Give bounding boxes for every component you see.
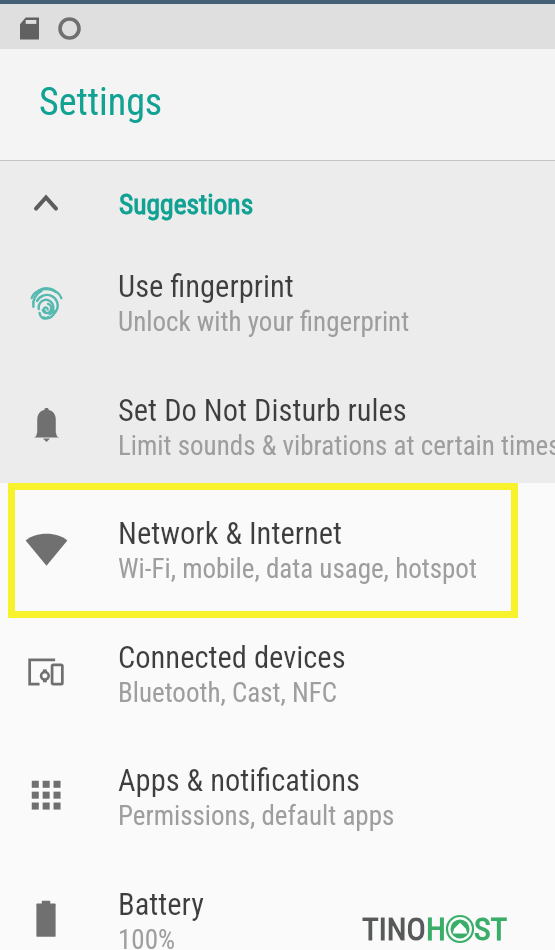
staticText: Set Do Not Disturb rules <box>118 393 407 429</box>
other: Do not disturb <box>32 408 61 442</box>
button[interactable] <box>0 240 555 364</box>
other: Status <box>58 17 81 40</box>
other: Battery <box>31 900 61 938</box>
staticText: Suggestions <box>119 188 254 220</box>
staticText: Unlock with your fingerprint <box>118 306 410 338</box>
staticText: Limit sounds & vibrations at certain tim… <box>118 430 555 462</box>
other: Connected devices <box>27 656 65 688</box>
staticText: Wi-Fi, mobile, data usage, hotspot <box>118 553 477 585</box>
staticText: Permissions, default apps <box>118 800 395 832</box>
other: Saved <box>20 17 39 40</box>
button[interactable] <box>0 741 555 865</box>
staticText: Network & Internet <box>118 516 343 552</box>
button[interactable] <box>0 865 555 950</box>
staticText: H <box>426 910 446 948</box>
button[interactable] <box>0 488 555 612</box>
staticText: Connected devices <box>118 640 346 676</box>
button[interactable] <box>0 617 555 741</box>
staticText: Apps & notifications <box>118 763 360 799</box>
button[interactable] <box>0 364 555 488</box>
staticText: Settings <box>39 80 163 125</box>
staticText: 100% <box>118 924 176 950</box>
other: Collapse suggestions <box>34 194 58 211</box>
other: Network and internet <box>25 528 68 570</box>
other: Apps and notifications <box>30 779 62 811</box>
staticText: Use fingerprint <box>118 269 294 305</box>
staticText: TINO <box>362 910 426 948</box>
staticText: ST <box>474 910 508 948</box>
other: Fingerprint <box>29 283 64 324</box>
button[interactable] <box>0 161 555 217</box>
staticText: Bluetooth, Cast, NFC <box>118 677 338 709</box>
staticText: Battery <box>118 887 204 923</box>
